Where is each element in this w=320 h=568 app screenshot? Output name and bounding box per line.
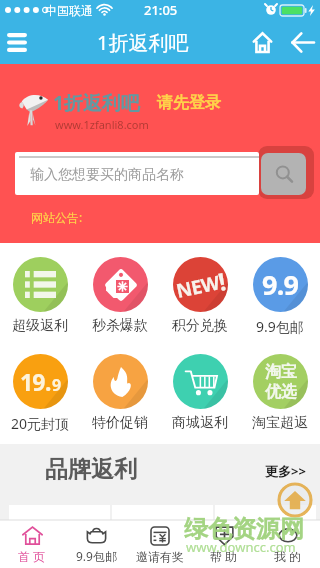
staticText: !	[215, 264, 228, 298]
staticText: 1折返利吧	[53, 90, 140, 116]
button[interactable]: 我 的	[256, 520, 320, 568]
button[interactable]: 秒杀爆款	[80, 243, 160, 340]
staticText: 21:05	[144, 1, 178, 19]
staticText: 超级返利	[12, 317, 68, 335]
button[interactable]: 超级返利	[0, 243, 80, 340]
button[interactable]: 品牌返利	[45, 455, 137, 484]
button[interactable]: Search	[261, 153, 306, 195]
staticText: 绿色资源网	[184, 514, 304, 544]
staticText: 淘宝超返	[252, 414, 308, 432]
button[interactable]: 邀请有奖	[128, 520, 192, 568]
staticText: 我 的	[274, 548, 302, 564]
button[interactable]: 帮 助	[192, 520, 256, 568]
button[interactable]: Home	[246, 20, 278, 64]
button[interactable]: 9.9包邮	[64, 520, 128, 568]
staticText: 9.9包邮	[76, 548, 117, 564]
staticText: .	[45, 366, 52, 397]
button[interactable]: 更多>>	[265, 462, 306, 480]
button[interactable]	[215, 505, 316, 525]
button[interactable]: 19	[0, 340, 80, 437]
button[interactable]: 首 页	[0, 520, 64, 568]
staticText: 19	[20, 366, 45, 397]
staticText: 20元封顶	[11, 414, 70, 433]
staticText: 9	[52, 374, 62, 396]
staticText: 网站公告:	[31, 209, 83, 225]
staticText: 帮 助	[210, 548, 238, 564]
button[interactable]: 请先登录	[154, 90, 224, 116]
staticText: 商城返利	[172, 414, 228, 432]
button[interactable]: 9.9	[240, 243, 320, 340]
staticText: 秒杀爆款	[92, 317, 148, 335]
button[interactable]: 输入您想要买的商品名称	[15, 152, 259, 195]
staticText: 淘宝	[265, 362, 297, 382]
staticText: 特价促销	[92, 414, 148, 432]
staticText: 更多>>	[265, 462, 306, 480]
staticText: 请先登录	[157, 93, 221, 113]
button[interactable]: NEW	[160, 243, 240, 340]
staticText: www.downcc.com	[186, 538, 296, 556]
staticText: NEW	[174, 269, 221, 304]
staticText: 输入您想要买的商品名称	[30, 166, 184, 184]
button[interactable]: 淘宝	[240, 340, 320, 437]
button[interactable]: Back	[286, 20, 319, 64]
button[interactable]: Menu	[0, 20, 34, 64]
button[interactable]: 商城返利	[160, 340, 240, 437]
button[interactable]: 特价促销	[80, 340, 160, 437]
staticText: 中国联通	[45, 3, 93, 18]
button[interactable]: Scroll to top	[277, 482, 313, 518]
staticText: 积分兑换	[172, 317, 228, 335]
staticText: 邀请有奖	[136, 549, 184, 564]
staticText: 优选	[265, 382, 297, 402]
staticText: 首 页	[18, 548, 46, 564]
staticText: 9.9	[262, 266, 299, 303]
staticText: 9.9包邮	[256, 317, 304, 336]
staticText: 品牌返利	[45, 455, 137, 484]
staticText: www.1zfanli8.com	[55, 117, 149, 132]
button[interactable]	[112, 505, 213, 525]
staticText: 1折返利吧	[97, 29, 189, 56]
button[interactable]	[9, 505, 110, 525]
